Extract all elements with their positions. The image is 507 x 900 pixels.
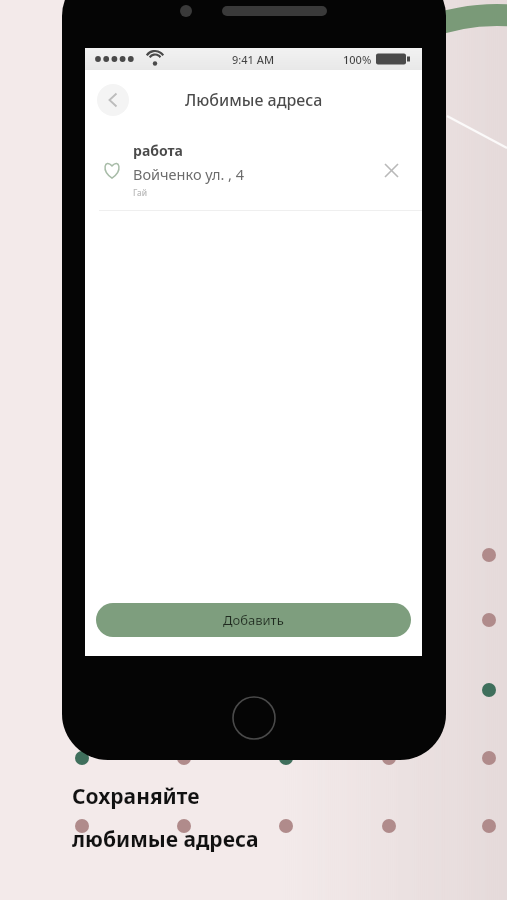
button[interactable]: Favorite	[85, 130, 422, 210]
staticText: любимые адреса	[72, 825, 259, 854]
staticText: Гай	[133, 187, 147, 199]
staticText: 9:41 AM	[232, 52, 275, 67]
staticText: 100%	[343, 52, 372, 67]
staticText: Добавить	[223, 611, 284, 629]
staticText: Любимые адреса	[185, 89, 323, 111]
button[interactable]: Добавить	[96, 603, 411, 637]
button[interactable]: Favorite	[99, 157, 125, 183]
button[interactable]: Remove	[378, 157, 404, 183]
staticText: работа	[133, 141, 183, 160]
button[interactable]: Back	[97, 84, 129, 116]
staticText: Сохраняйте	[72, 782, 200, 811]
staticText: Войченко ул. , 4	[133, 164, 245, 184]
